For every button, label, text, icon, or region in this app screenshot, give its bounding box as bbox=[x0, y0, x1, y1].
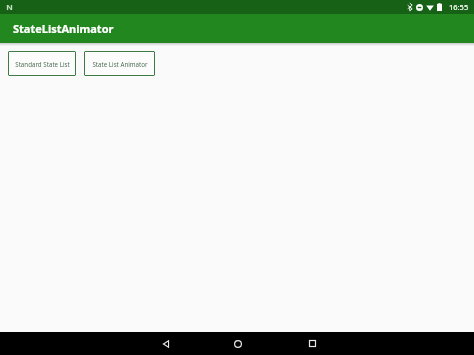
staticText: StateListAnimator bbox=[13, 21, 114, 36]
staticText: Standard State List bbox=[15, 60, 70, 68]
button[interactable]: Back bbox=[157, 335, 174, 352]
staticText: 16:55 bbox=[449, 2, 469, 12]
button[interactable]: Home bbox=[229, 335, 246, 352]
staticText: State List Animator bbox=[92, 60, 148, 68]
button[interactable]: Recent apps bbox=[304, 335, 321, 352]
button[interactable]: State List Animator bbox=[84, 51, 155, 76]
button[interactable]: Standard State List bbox=[8, 51, 76, 76]
